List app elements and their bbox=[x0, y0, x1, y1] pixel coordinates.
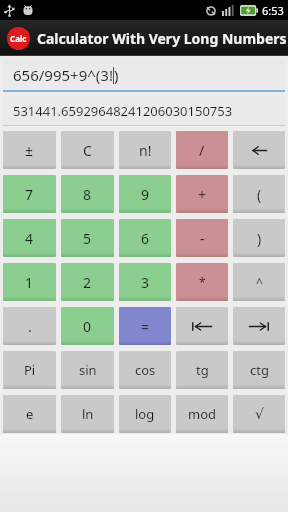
staticText: - bbox=[200, 229, 205, 248]
button[interactable]: tg bbox=[176, 351, 228, 389]
button[interactable]: ( bbox=[233, 175, 285, 213]
staticText: 7 bbox=[25, 185, 34, 204]
button[interactable]: 656/995+9^(3! bbox=[3, 59, 285, 90]
staticText: n! bbox=[139, 141, 152, 160]
button[interactable]: sin bbox=[61, 351, 114, 389]
button[interactable]: 5 bbox=[61, 219, 114, 257]
staticText: log bbox=[135, 405, 155, 423]
staticText: ) bbox=[257, 229, 262, 248]
staticText: 3 bbox=[141, 273, 150, 292]
staticText: √ bbox=[255, 406, 264, 422]
staticText: ( bbox=[257, 185, 262, 204]
button[interactable]: e bbox=[3, 395, 56, 433]
staticText: 2 bbox=[83, 273, 92, 292]
staticText: ± bbox=[25, 141, 34, 160]
button[interactable]: 0 bbox=[61, 307, 114, 345]
staticText: * bbox=[199, 274, 206, 290]
button[interactable]: ^ bbox=[233, 263, 285, 301]
button[interactable]: ln bbox=[61, 395, 114, 433]
button[interactable]: * bbox=[176, 263, 228, 301]
button[interactable]: 8 bbox=[61, 175, 114, 213]
staticText: ^ bbox=[256, 274, 263, 290]
button[interactable]: √ bbox=[233, 395, 285, 433]
button[interactable]: log bbox=[119, 395, 171, 433]
button[interactable]: Pi bbox=[3, 351, 56, 389]
button[interactable]: Move cursor to start bbox=[176, 307, 228, 345]
staticText: / bbox=[199, 141, 205, 160]
staticText: mod bbox=[188, 405, 217, 423]
button[interactable]: ± bbox=[3, 131, 56, 169]
button[interactable]: 4 bbox=[3, 219, 56, 257]
staticText: 8 bbox=[83, 185, 92, 204]
staticText: Calc bbox=[10, 33, 27, 44]
button[interactable]: / bbox=[176, 131, 228, 169]
staticText: sin bbox=[79, 361, 97, 379]
staticText: 6:53 bbox=[262, 3, 284, 18]
staticText: 531441.65929648241206030150753 bbox=[13, 102, 233, 120]
staticText: e bbox=[26, 405, 34, 423]
staticText: Pi bbox=[24, 361, 36, 379]
staticText: . bbox=[28, 317, 32, 336]
button[interactable]: 9 bbox=[119, 175, 171, 213]
staticText: cos bbox=[135, 361, 156, 379]
button[interactable]: 3 bbox=[119, 263, 171, 301]
button[interactable]: 531441.65929648241206030150753 bbox=[3, 96, 285, 125]
staticText: ctg bbox=[250, 361, 269, 379]
button[interactable]: cos bbox=[119, 351, 171, 389]
staticText: 6 bbox=[141, 229, 150, 248]
button[interactable]: - bbox=[176, 219, 228, 257]
staticText: ln bbox=[82, 405, 94, 423]
staticText: + bbox=[198, 185, 207, 204]
staticText: 5 bbox=[83, 229, 92, 248]
staticText: 0 bbox=[83, 317, 92, 336]
button[interactable]: Backspace bbox=[233, 131, 285, 169]
staticText: 1 bbox=[25, 273, 34, 292]
button[interactable]: n! bbox=[119, 131, 171, 169]
button[interactable]: . bbox=[3, 307, 56, 345]
staticText: Calculator With Very Long Numbers bbox=[37, 29, 287, 48]
button[interactable]: ctg bbox=[233, 351, 285, 389]
staticText: = bbox=[141, 317, 150, 336]
button[interactable]: ) bbox=[233, 219, 285, 257]
button[interactable]: 6 bbox=[119, 219, 171, 257]
staticText: tg bbox=[196, 361, 209, 379]
button[interactable]: + bbox=[176, 175, 228, 213]
staticText: C bbox=[83, 141, 92, 160]
staticText: 656/995+9^(3! bbox=[13, 65, 113, 85]
button[interactable]: C bbox=[61, 131, 114, 169]
button[interactable]: 2 bbox=[61, 263, 114, 301]
button[interactable]: mod bbox=[176, 395, 228, 433]
staticText: 4 bbox=[25, 229, 34, 248]
button[interactable]: Move cursor to end bbox=[233, 307, 285, 345]
staticText: 9 bbox=[141, 185, 150, 204]
button[interactable]: 1 bbox=[3, 263, 56, 301]
button[interactable]: 7 bbox=[3, 175, 56, 213]
staticText: ) bbox=[114, 65, 119, 85]
button[interactable]: = bbox=[119, 307, 171, 345]
